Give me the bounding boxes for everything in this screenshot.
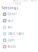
staticText: Settings: [1, 5, 18, 10]
button[interactable]: Light: [0, 37, 38, 43]
button[interactable]: Gener: [0, 11, 38, 17]
staticText: Gener: [7, 12, 16, 16]
button[interactable]: Wi-Fi: [0, 17, 38, 24]
staticText: Mon 3 Jun Wi-Fi 100%: [13, 0, 38, 6]
button[interactable]: Shortc: [0, 43, 38, 50]
staticText: Shortc: [7, 45, 15, 48]
staticText: Wi-Fi: [7, 19, 13, 22]
staticText: Sou: [7, 25, 12, 29]
button[interactable]: USB-C Cable: [0, 30, 38, 37]
staticText: USB-C Cable: [7, 32, 24, 35]
staticText: Light: [7, 38, 14, 42]
button[interactable]: Sou: [0, 24, 38, 30]
